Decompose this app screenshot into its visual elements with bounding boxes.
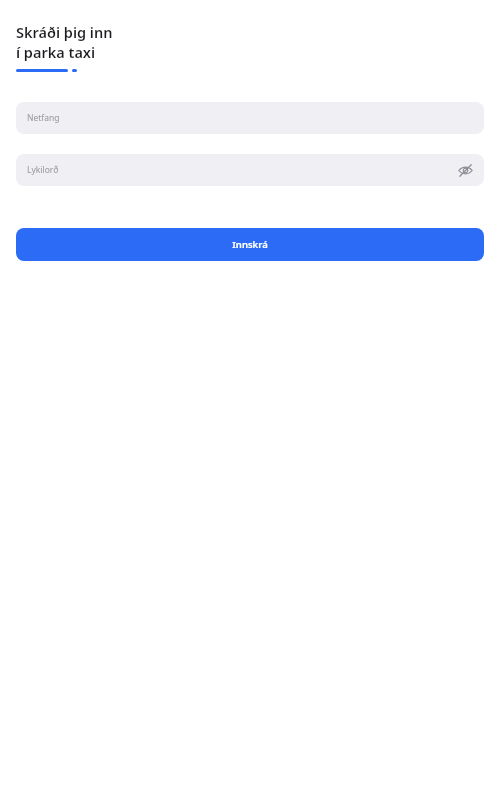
staticText: Netfang [27,112,60,124]
staticText: í parka taxi [16,42,96,62]
button[interactable]: Netfang [16,102,484,134]
staticText: Skráði þig inn [16,22,113,42]
staticText: Innskrá [232,238,268,251]
button[interactable]: Innskrá [16,228,484,261]
button[interactable]: Lykilorð [16,154,484,186]
button[interactable]: Show password [452,157,478,183]
staticText: Lykilorð [27,164,59,176]
